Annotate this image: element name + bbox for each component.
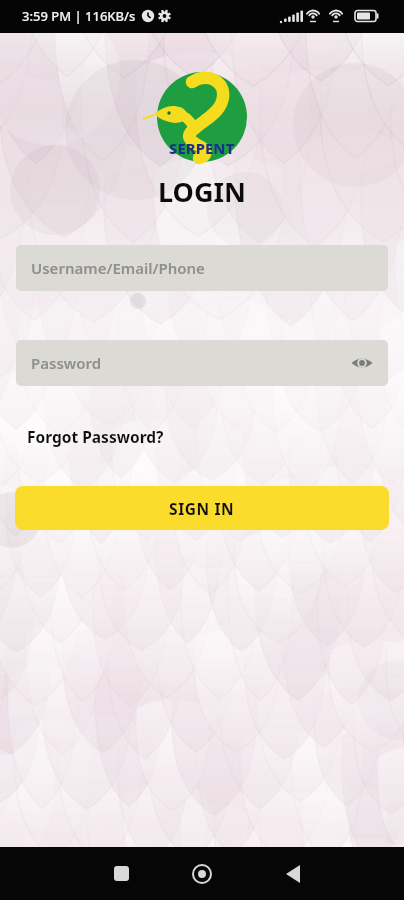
button[interactable] [349,350,375,376]
staticText: SIGN IN [169,498,235,519]
button[interactable] [276,863,310,885]
staticText: Username/Email/Phone [31,258,205,278]
button[interactable] [185,863,219,885]
staticText: LOGIN [158,173,246,210]
staticText: Forgot Password? [27,426,164,447]
button[interactable]: Password [16,340,388,386]
button[interactable]: Username/Email/Phone [16,245,388,291]
button[interactable]: SIGN IN [15,486,389,530]
button[interactable] [104,863,138,885]
staticText: Password [31,353,102,373]
staticText: 3:59 PM | 116KB/s [22,7,136,25]
staticText: SERPENT [169,138,235,158]
button[interactable]: Forgot Password? [27,426,164,447]
